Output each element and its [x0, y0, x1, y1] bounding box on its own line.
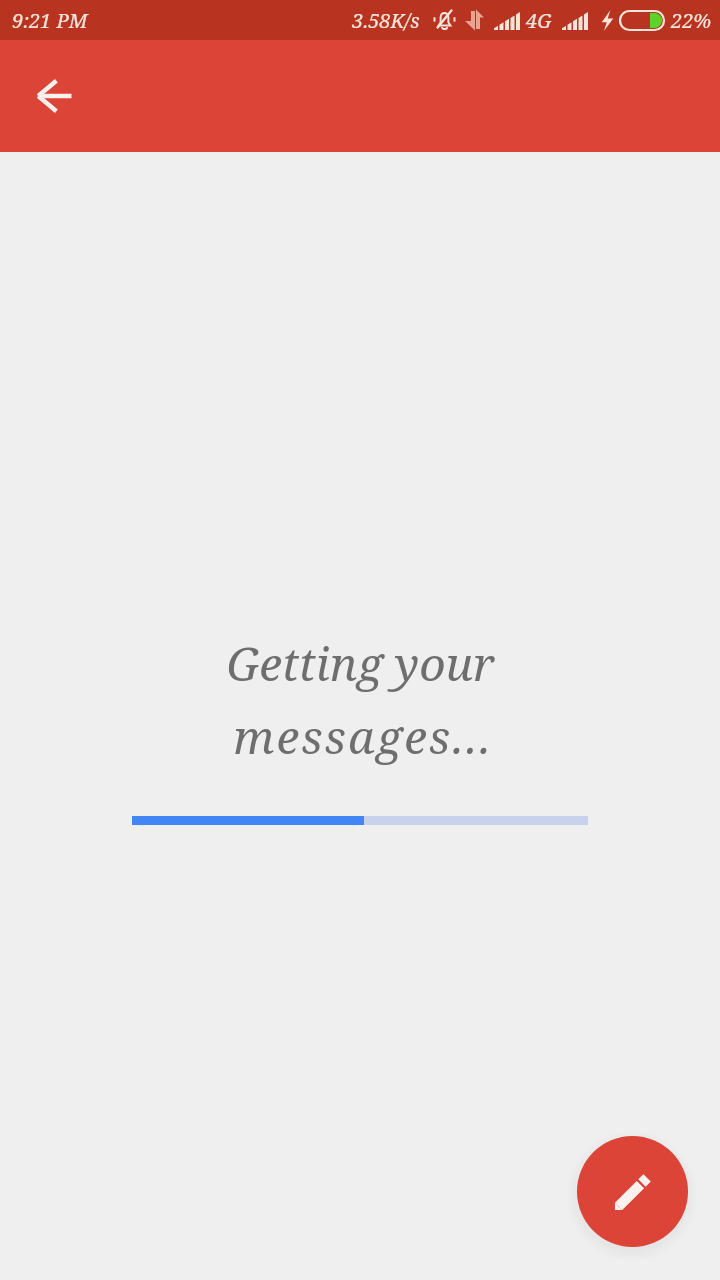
staticText: messages...	[233, 705, 493, 768]
staticText: 22%	[671, 7, 712, 34]
button[interactable]: Back	[18, 59, 92, 133]
staticText: 4G	[526, 7, 552, 34]
staticText: Getting your	[226, 632, 495, 695]
button[interactable]: Compose message	[577, 1136, 688, 1247]
staticText: 3.58K/s	[352, 7, 420, 34]
staticText: 9:21 PM	[12, 7, 88, 34]
